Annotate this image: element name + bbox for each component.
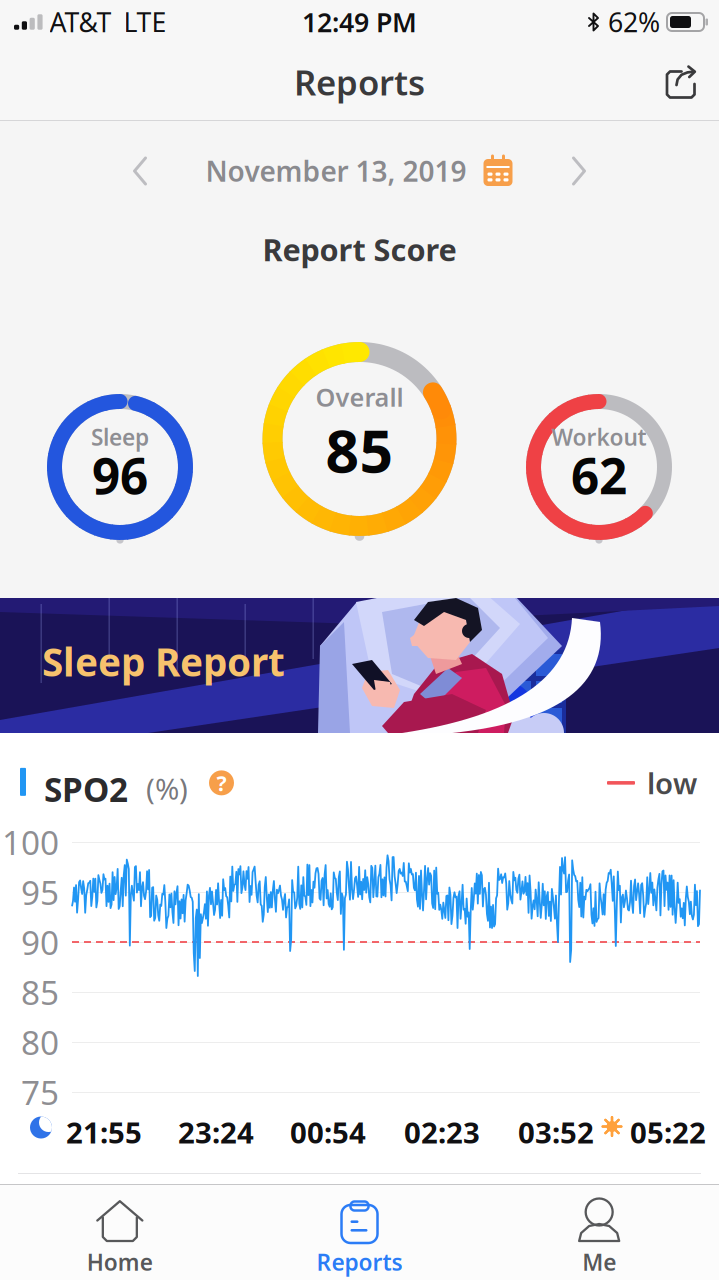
staticText: Sleep [91,422,149,452]
staticText: Report Score [262,229,456,270]
staticText: 62% [608,4,660,40]
button[interactable]: Previous day [112,143,168,199]
staticText: Sleep Report [42,636,285,687]
staticText: SPO2 [44,767,128,811]
staticText: 00:54 [290,1112,366,1151]
staticText: 03:52 [518,1112,594,1151]
staticText: Reports [294,59,425,105]
staticText: 02:23 [404,1112,480,1151]
button[interactable]: Reports [240,1185,479,1280]
button[interactable]: Share [665,55,719,109]
staticText: 95 [21,870,59,914]
staticText: 21:55 [66,1112,142,1151]
staticText: 80 [21,1020,59,1064]
staticText: 62 [571,442,627,508]
staticText: 75 [21,1070,59,1114]
staticText: 12:49 PM [302,4,417,40]
button[interactable]: November 13, 2019 [205,143,513,199]
staticText: 96 [92,442,148,508]
staticText: low [647,763,697,802]
staticText: 100 [2,820,59,864]
staticText: AT&T [50,4,112,40]
button[interactable]: Home [0,1185,240,1280]
staticText: 05:22 [630,1112,706,1151]
staticText: ? [216,769,226,797]
staticText: Me [582,1247,616,1277]
staticText: 23:24 [178,1112,254,1151]
staticText: Workout [551,422,646,452]
staticText: 85 [325,411,393,489]
staticText: Overall [315,380,403,414]
staticText: 85 [21,970,59,1014]
staticText: November 13, 2019 [205,152,466,190]
staticText: Reports [316,1247,402,1277]
button[interactable]: Next day [551,143,607,199]
staticText: Home [87,1247,153,1277]
button[interactable]: Me [479,1185,719,1280]
staticText: LTE [124,4,167,40]
button[interactable]: About SPO2 [203,766,240,800]
staticText: (%) [146,769,188,808]
staticText: 90 [21,920,59,964]
